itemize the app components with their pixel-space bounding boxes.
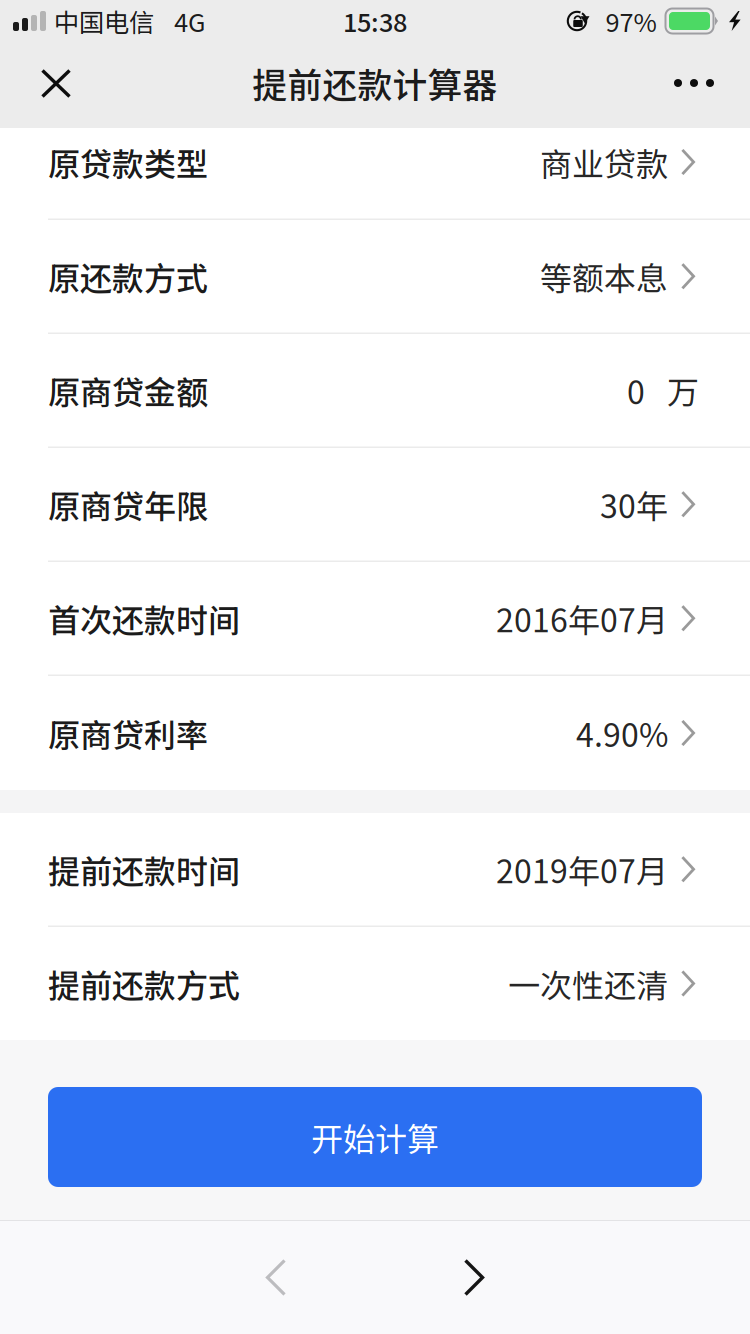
staticText: 15:38	[343, 3, 407, 39]
staticText: 原还款方式	[48, 253, 208, 299]
staticText: 原贷款类型	[48, 139, 208, 185]
staticText: 2016年07月	[496, 595, 668, 641]
button[interactable]: 关闭	[12, 60, 100, 106]
button[interactable]: 后退	[220, 1232, 332, 1322]
staticText: 30年	[600, 481, 668, 527]
staticText: 首次还款时间	[48, 595, 240, 641]
button[interactable]: 首次还款时间	[0, 562, 750, 676]
staticText: 97%	[605, 3, 656, 39]
staticText: 等额本息	[540, 253, 668, 299]
staticText: 提前还款方式	[48, 960, 240, 1007]
staticText: 中国电信	[54, 3, 154, 39]
button[interactable]: 开始计算	[48, 1087, 702, 1187]
staticText: 提前还款计算器	[252, 58, 497, 108]
button[interactable]: 原还款方式	[0, 220, 750, 334]
button[interactable]: 提前还款方式	[0, 927, 750, 1040]
staticText: 商业贷款	[540, 139, 668, 185]
staticText: 开始计算	[311, 1114, 439, 1160]
button[interactable]: 更多	[656, 60, 732, 106]
staticText: 原商贷年限	[48, 481, 208, 527]
staticText: 4G	[174, 3, 205, 39]
button[interactable]: 原商贷年限	[0, 448, 750, 562]
staticText: 2019年07月	[496, 846, 668, 892]
staticText: 0	[627, 367, 645, 413]
staticText: 原商贷利率	[48, 710, 208, 756]
button[interactable]: 原商贷金额	[0, 334, 750, 448]
staticText: 一次性还清	[508, 960, 668, 1007]
button[interactable]: 原贷款类型	[0, 128, 750, 220]
staticText: 提前还款时间	[48, 846, 240, 892]
staticText: 原商贷金额	[48, 367, 208, 413]
staticText: 4.90%	[576, 710, 668, 756]
button[interactable]: 提前还款时间	[0, 813, 750, 927]
button[interactable]: 原商贷利率	[0, 676, 750, 790]
staticText: 万	[667, 367, 699, 413]
button[interactable]: 前进	[418, 1232, 530, 1322]
